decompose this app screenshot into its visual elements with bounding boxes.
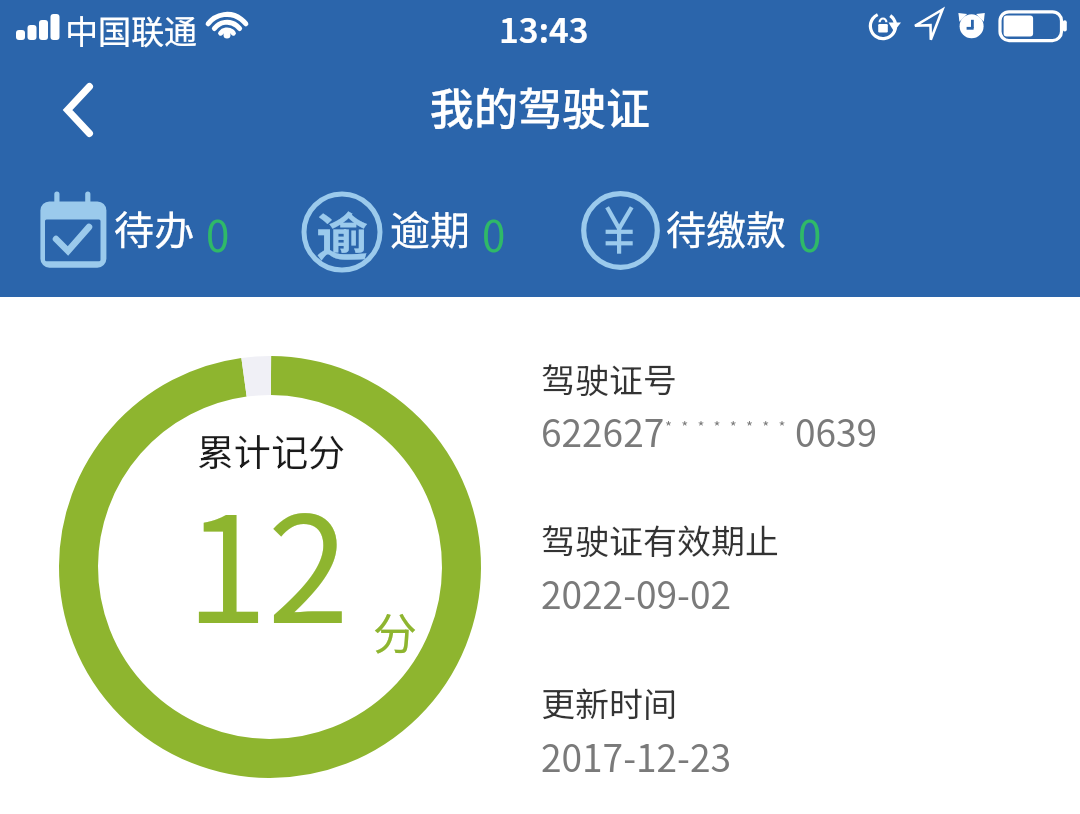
staticText: 待办	[114, 199, 194, 257]
staticText: 更新时间	[541, 678, 677, 727]
staticText: 累计记分	[197, 423, 345, 477]
staticText: 12	[186, 452, 350, 665]
staticText: 待缴款	[666, 199, 786, 257]
button[interactable]: 待办	[36, 190, 251, 274]
staticText: 逾期	[390, 199, 470, 257]
staticText: 我的驾驶证	[430, 74, 650, 138]
staticText: 驾驶证号	[541, 354, 677, 403]
staticText: 622627	[541, 404, 665, 458]
staticText: 分	[373, 599, 417, 663]
staticText: 0	[206, 203, 230, 264]
staticText: 0639	[795, 404, 878, 458]
staticText: 驾驶证有效期止	[541, 515, 779, 564]
staticText: 13:43	[499, 4, 589, 53]
button[interactable]: Back	[40, 72, 116, 148]
staticText: ********	[665, 415, 795, 437]
staticText: 2022-09-02	[541, 566, 731, 620]
staticText: 0	[798, 203, 822, 264]
staticText: 0	[482, 203, 506, 264]
staticText: 2017-12-23	[541, 729, 731, 783]
staticText: 中国联通	[65, 6, 197, 54]
staticText: 逾	[316, 196, 369, 271]
button[interactable]: 逾	[302, 190, 527, 274]
button[interactable]: 待缴款	[582, 190, 843, 274]
